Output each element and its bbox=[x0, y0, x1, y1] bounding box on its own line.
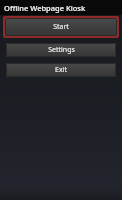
staticText: Offline Webpage Kiosk bbox=[4, 3, 86, 13]
button[interactable]: Exit bbox=[6, 63, 116, 77]
staticText: Settings bbox=[48, 45, 75, 55]
staticText: Start bbox=[53, 22, 69, 32]
button[interactable]: Start bbox=[3, 16, 119, 38]
button[interactable]: Settings bbox=[6, 43, 116, 57]
staticText: Exit bbox=[55, 65, 67, 75]
